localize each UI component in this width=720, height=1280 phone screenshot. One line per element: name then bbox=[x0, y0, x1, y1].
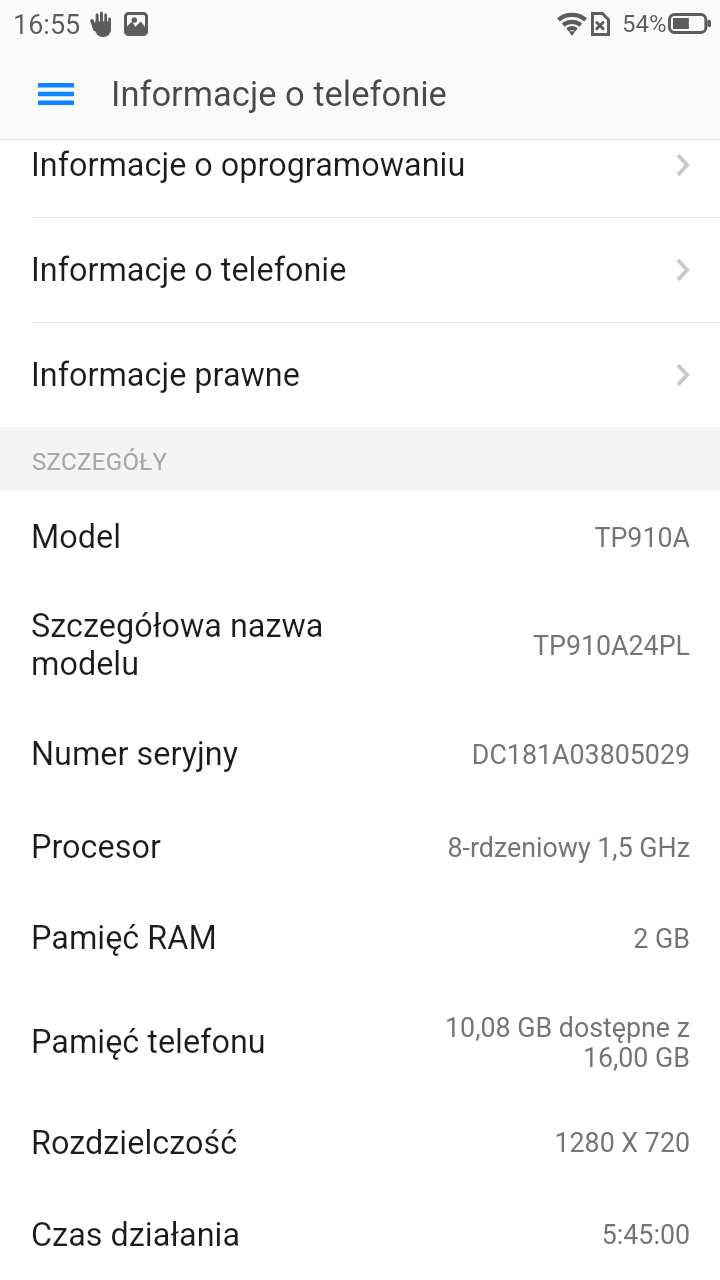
staticText: TP910A bbox=[594, 522, 690, 553]
button[interactable]: Pamięć telefonu bbox=[0, 983, 720, 1095]
staticText: Szczegółowa nazwa modelu bbox=[31, 607, 331, 683]
staticText: 1280 X 720 bbox=[554, 1127, 690, 1158]
button[interactable]: Informacje o telefonie bbox=[0, 218, 720, 323]
staticText: Pamięć telefonu bbox=[31, 1023, 266, 1061]
staticText: 5:45:00 bbox=[601, 1219, 690, 1250]
staticText: 8-rdzeniowy 1,5 GHz bbox=[447, 832, 690, 863]
staticText: Informacje o telefonie bbox=[31, 251, 347, 289]
staticText: Informacje prawne bbox=[31, 356, 300, 394]
button[interactable]: Menu bbox=[10, 48, 102, 139]
staticText: SZCZEGÓŁY bbox=[32, 448, 168, 476]
staticText: 16:55 bbox=[13, 9, 81, 41]
button[interactable]: Informacje o oprogramowaniu bbox=[0, 140, 720, 218]
staticText: 54% bbox=[622, 10, 667, 38]
staticText: DC181A03805029 bbox=[471, 739, 690, 770]
button[interactable]: Procesor bbox=[0, 801, 720, 893]
staticText: Pamięć RAM bbox=[31, 919, 217, 957]
button[interactable]: Informacje prawne bbox=[0, 323, 720, 427]
staticText: 2 GB bbox=[633, 923, 690, 954]
staticText: Model bbox=[31, 518, 122, 556]
staticText: 10,08 GB dostępne z 16,00 GB bbox=[445, 1012, 690, 1073]
staticText: Procesor bbox=[31, 828, 161, 866]
staticText: TP910A24PL bbox=[532, 630, 690, 661]
button[interactable]: Czas działania bbox=[0, 1190, 720, 1279]
staticText: Czas działania bbox=[31, 1216, 241, 1254]
staticText: Rozdzielczość bbox=[31, 1124, 238, 1162]
button[interactable]: Numer seryjny bbox=[0, 707, 720, 801]
button[interactable]: Pamięć RAM bbox=[0, 893, 720, 983]
staticText: Informacje o oprogramowaniu bbox=[31, 146, 466, 184]
button[interactable]: Szczegółowa nazwa modelu bbox=[0, 583, 720, 707]
button[interactable]: Model bbox=[0, 491, 720, 583]
staticText: Informacje o telefonie bbox=[111, 74, 447, 114]
staticText: Numer seryjny bbox=[31, 735, 238, 773]
button[interactable]: Rozdzielczość bbox=[0, 1095, 720, 1190]
